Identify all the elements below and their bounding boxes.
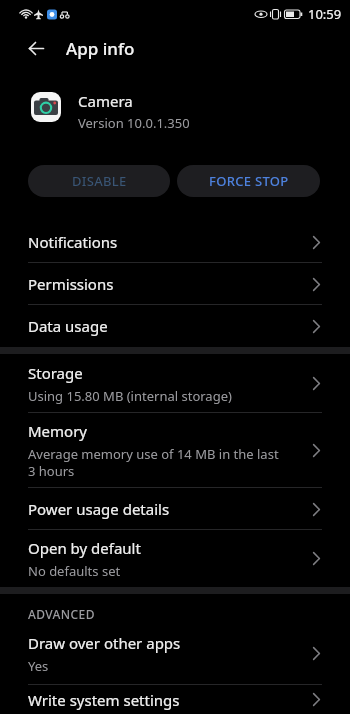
staticText: Write system settings (28, 690, 180, 710)
staticText: Notifications (28, 232, 118, 252)
button[interactable]: Data usage (0, 305, 350, 347)
staticText: DISABLE (72, 172, 127, 190)
button[interactable]: Draw over other apps (0, 622, 350, 685)
button[interactable]: Storage (0, 354, 350, 413)
button[interactable]: Write system settings (0, 685, 350, 714)
button[interactable]: Power usage details (0, 488, 350, 530)
button[interactable]: FORCE STOP (177, 165, 320, 197)
staticText: Yes (28, 657, 49, 675)
button[interactable]: Memory (0, 413, 350, 488)
staticText: Memory (28, 421, 88, 441)
staticText: Version 10.0.1.350 (78, 114, 190, 132)
staticText: Using 15.80 MB (internal storage) (28, 387, 232, 405)
staticText: 10:59 (308, 5, 342, 23)
staticText: App info (66, 37, 135, 60)
staticText: Open by default (28, 538, 141, 558)
staticText: ADVANCED (28, 606, 95, 622)
button[interactable]: Permissions (0, 263, 350, 305)
staticText: FORCE STOP (209, 172, 289, 190)
staticText: Camera (78, 91, 133, 111)
staticText: Draw over other apps (28, 633, 181, 653)
button[interactable]: Open by default (0, 530, 350, 587)
staticText: Power usage details (28, 499, 170, 519)
staticText: Average memory use of 14 MB in the last … (28, 445, 279, 480)
button[interactable]: DISABLE (28, 165, 170, 197)
staticText: Data usage (28, 316, 108, 336)
staticText: Permissions (28, 274, 114, 294)
staticText: Storage (28, 363, 83, 383)
button[interactable]: Notifications (0, 221, 350, 263)
button[interactable] (0, 28, 56, 68)
staticText: No defaults set (28, 562, 121, 580)
